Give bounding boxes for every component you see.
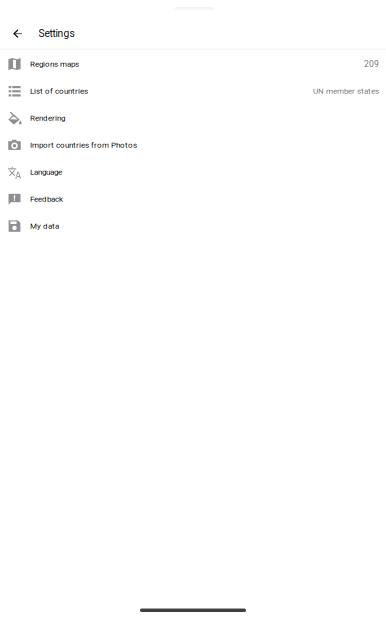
staticText: Settings [38,28,74,40]
button[interactable]: Rendering [0,105,386,132]
button[interactable]: Back [0,19,30,49]
staticText: Rendering [30,113,65,123]
staticText: List of countries [30,86,88,96]
button[interactable]: List of countries [0,78,386,105]
button[interactable]: Import countries from Photos [0,132,386,159]
staticText: 209 [364,59,379,69]
button[interactable]: Language [0,159,386,186]
staticText: UN member states [313,86,379,96]
staticText: My data [30,221,59,231]
staticText: Language [30,167,62,177]
staticText: Feedback [30,194,63,204]
staticText: Regions maps [30,59,79,69]
button[interactable]: Regions maps [0,51,386,78]
staticText: Import countries from Photos [30,140,137,150]
button[interactable]: Feedback [0,186,386,213]
button[interactable]: My data [0,213,386,240]
